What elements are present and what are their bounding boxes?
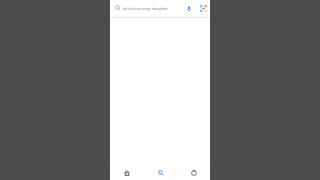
button[interactable]: africa bird songs daughter: [112, 2, 196, 14]
button[interactable]: Home: [110, 166, 144, 180]
button[interactable]: Voice search: [184, 4, 193, 13]
button[interactable]: Google Lens: [198, 3, 208, 13]
staticText: africa bird songs daughter: [123, 6, 183, 11]
button[interactable]: Saved: [177, 166, 210, 180]
button[interactable]: Search: [144, 166, 177, 180]
